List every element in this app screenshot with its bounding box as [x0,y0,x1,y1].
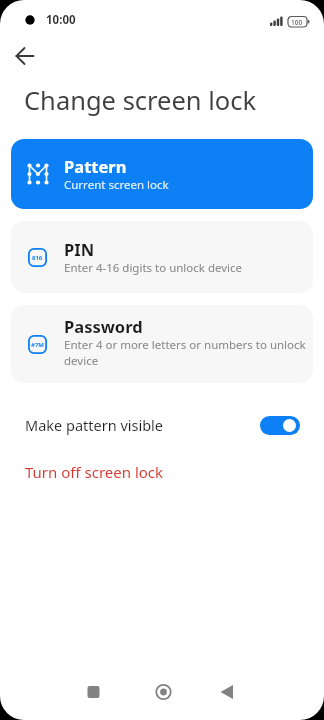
staticText: 10:00 [46,12,76,28]
staticText: Pattern [64,155,127,177]
staticText: #7M [31,341,44,349]
staticText: Change screen lock [24,83,257,118]
staticText: 816 [32,254,43,262]
button[interactable]: #7M [11,305,313,383]
staticText: 100 [291,18,303,27]
staticText: PIN [64,238,95,260]
button[interactable]: Pattern [11,139,313,209]
button[interactable]: Turn off screen lock [25,462,164,482]
staticText: Make pattern visible [25,415,164,435]
button[interactable]: 816 [11,221,313,293]
button[interactable] [216,674,324,720]
button[interactable] [108,674,216,720]
staticText: Password [64,315,143,337]
staticText: Current screen lock [64,177,169,193]
staticText: Enter 4-16 digits to unlock device [64,260,243,276]
staticText: device [64,353,99,369]
button[interactable] [260,416,300,435]
staticText: Enter 4 or more letters or numbers to un… [64,337,306,353]
button[interactable] [8,39,42,73]
button[interactable]: Make pattern visible [25,412,300,438]
button[interactable] [0,674,108,720]
